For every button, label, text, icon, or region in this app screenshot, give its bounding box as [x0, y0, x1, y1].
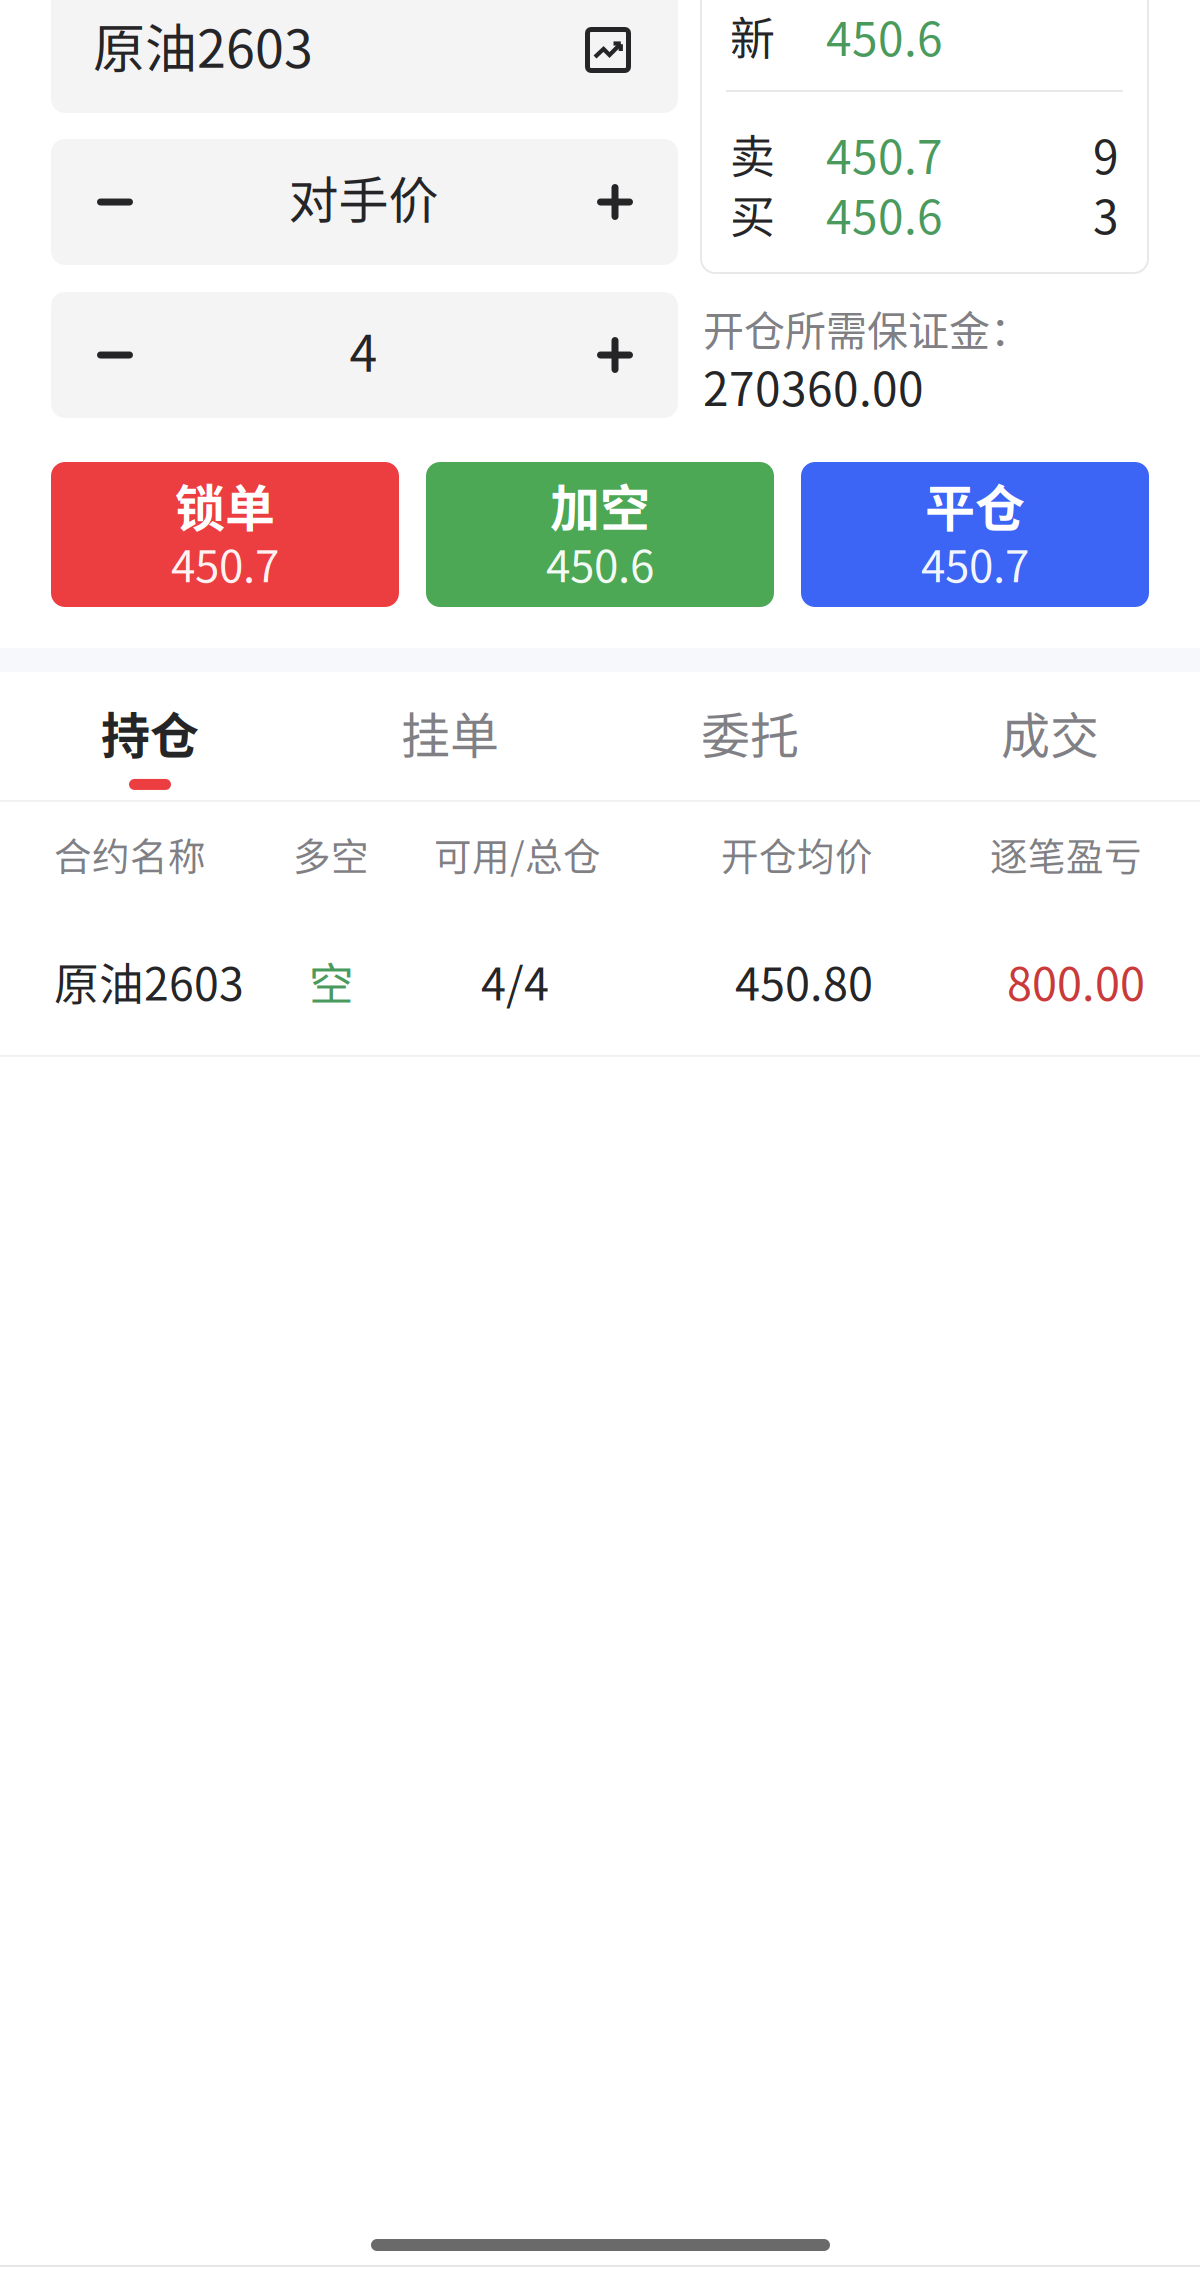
button[interactable]: Decrease — [60, 139, 170, 265]
staticText: 450.6 — [826, 181, 943, 247]
staticText: 可用/总仓 — [434, 827, 601, 881]
staticText: 委托 — [701, 697, 799, 768]
staticText: 开仓所需保证金： — [703, 298, 1031, 358]
button[interactable]: 锁单 — [51, 462, 399, 607]
staticText: 450.7 — [826, 121, 943, 187]
button[interactable]: Chart — [585, 27, 631, 73]
staticText: 9 — [1093, 121, 1119, 187]
staticText: 450.6 — [826, 3, 943, 69]
staticText: 锁单 — [175, 469, 275, 541]
staticText: 新 — [730, 3, 775, 69]
button[interactable]: 挂单 — [300, 672, 600, 800]
staticText: 开仓均价 — [721, 827, 873, 881]
staticText: 450.6 — [546, 531, 654, 595]
staticText: 450.7 — [921, 531, 1029, 595]
staticText: 4 — [349, 314, 377, 386]
staticText: 卖 — [730, 121, 775, 187]
button[interactable]: 委托 — [600, 672, 900, 800]
staticText: 对手价 — [288, 161, 438, 233]
button[interactable]: Decrease — [60, 292, 170, 418]
staticText: 持仓 — [101, 697, 199, 768]
staticText: 成交 — [1001, 697, 1099, 768]
staticText: 原油2603 — [93, 7, 313, 83]
button[interactable]: 持仓 — [0, 672, 300, 800]
staticText: 多空 — [293, 827, 369, 881]
button[interactable]: 平仓 — [801, 462, 1149, 607]
staticText: 挂单 — [401, 697, 499, 768]
staticText: 3 — [1093, 181, 1119, 247]
staticText: 450.7 — [171, 531, 279, 595]
staticText: 270360.00 — [703, 353, 924, 419]
staticText: 逐笔盈亏 — [990, 827, 1142, 881]
button[interactable]: Increase — [560, 139, 670, 265]
staticText: 加空 — [550, 469, 650, 541]
staticText: 800.00 — [1007, 948, 1145, 1014]
staticText: 平仓 — [925, 469, 1025, 541]
button[interactable]: Increase — [560, 292, 670, 418]
staticText: 450.80 — [735, 948, 873, 1014]
staticText: 原油2603 — [54, 949, 244, 1013]
staticText: 合约名称 — [54, 827, 206, 881]
button[interactable]: 成交 — [900, 672, 1200, 800]
button[interactable]: 加空 — [426, 462, 774, 607]
button[interactable]: 原油2603 — [0, 912, 1200, 1050]
staticText: 空 — [309, 949, 354, 1013]
staticText: 买 — [730, 181, 775, 247]
staticText: 4/4 — [481, 948, 549, 1014]
